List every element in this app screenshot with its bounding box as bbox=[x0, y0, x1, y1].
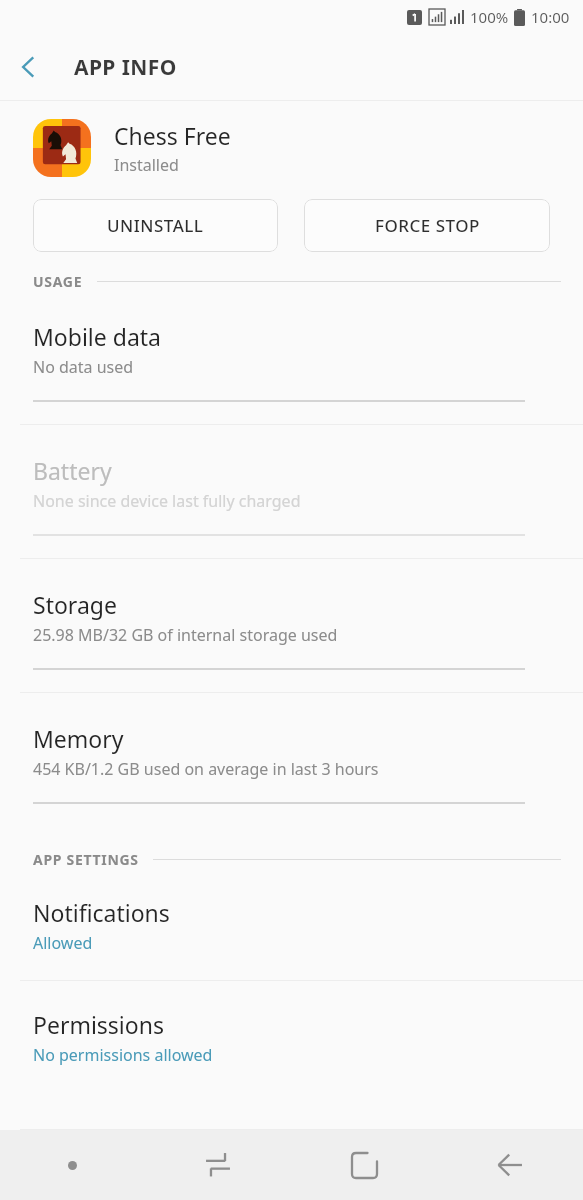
staticText: None since device last fully charged bbox=[33, 490, 301, 512]
staticText: FORCE STOP bbox=[375, 214, 480, 237]
staticText: Mobile data bbox=[33, 321, 161, 352]
button[interactable]: Notifications bbox=[0, 869, 583, 980]
staticText: 100% bbox=[470, 7, 509, 27]
staticText: APP INFO bbox=[74, 53, 177, 82]
button[interactable]: UNINSTALL bbox=[33, 199, 278, 252]
staticText: No permissions allowed bbox=[33, 1044, 213, 1066]
staticText: Chess Free bbox=[114, 120, 231, 151]
button[interactable]: FORCE STOP bbox=[304, 199, 550, 252]
staticText: No data used bbox=[33, 356, 134, 378]
staticText: Installed bbox=[114, 154, 179, 176]
staticText: Allowed bbox=[33, 932, 93, 954]
button[interactable]: Back bbox=[0, 39, 56, 95]
staticText: 10:00 bbox=[531, 7, 570, 27]
staticText: Notifications bbox=[33, 897, 170, 928]
button[interactable]: Battery bbox=[0, 425, 583, 558]
staticText: Storage bbox=[33, 589, 117, 620]
staticText: APP SETTINGS bbox=[33, 850, 139, 869]
staticText: USAGE bbox=[33, 272, 83, 291]
staticText: Memory bbox=[33, 723, 124, 754]
staticText: Battery bbox=[33, 455, 112, 486]
button[interactable]: Home bbox=[291, 1130, 437, 1200]
button[interactable]: Storage bbox=[0, 559, 583, 692]
staticText: 25.98 MB/32 GB of internal storage used bbox=[33, 624, 338, 646]
button[interactable]: Memory bbox=[0, 693, 583, 826]
staticText: 454 KB/1.2 GB used on average in last 3 … bbox=[33, 758, 379, 780]
button[interactable]: Recent apps bbox=[145, 1130, 291, 1200]
button[interactable]: Back bbox=[437, 1130, 583, 1200]
button[interactable]: Permissions bbox=[0, 981, 583, 1092]
staticText: Permissions bbox=[33, 1009, 164, 1040]
staticText: UNINSTALL bbox=[107, 214, 204, 237]
button[interactable]: Mobile data bbox=[0, 291, 583, 424]
